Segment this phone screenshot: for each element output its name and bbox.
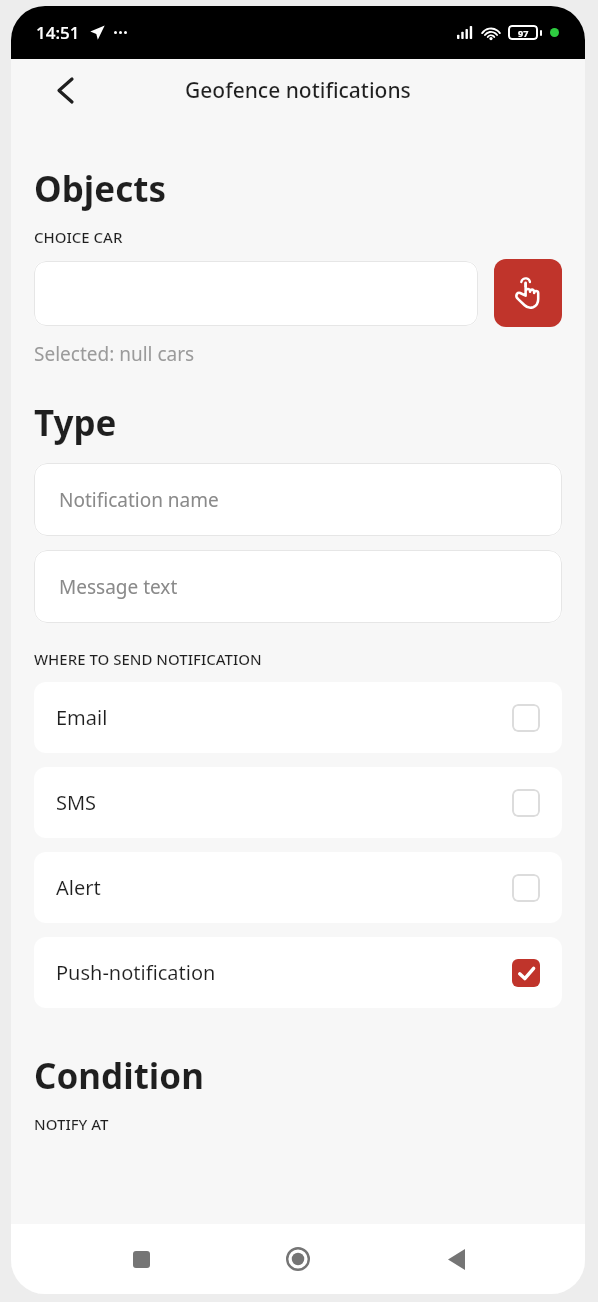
staticText: 97 [518,27,529,39]
staticText: Type [34,399,117,447]
staticText: Email [56,704,108,731]
staticText: SMS [56,789,97,816]
staticText: Notification name [59,487,219,513]
button[interactable]: Choose car [494,259,562,327]
button[interactable]: SMS [34,767,562,838]
button[interactable]: Push-notification [34,937,562,1008]
staticText: Alert [56,874,101,901]
staticText: Push-notification [56,959,216,986]
staticText: WHERE TO SEND NOTIFICATION [34,649,262,669]
staticText: NOTIFY AT [34,1114,109,1134]
staticText: Objects [34,165,166,213]
staticText: 14:51 [36,21,80,44]
staticText: CHOICE CAR [34,227,123,247]
staticText: Condition [34,1052,204,1100]
button[interactable]: Alert [34,852,562,923]
staticText: Selected: null cars [34,341,195,367]
staticText: Geofence notifications [185,76,411,105]
button[interactable]: Recent apps [113,1231,169,1287]
button[interactable]: Notification name [34,463,562,536]
button[interactable]: Home [270,1231,326,1287]
button[interactable] [34,261,478,326]
button[interactable]: Back [43,68,87,112]
button[interactable]: Message text [34,550,562,623]
button[interactable]: Back [428,1231,484,1287]
button[interactable]: Email [34,682,562,753]
staticText: Message text [59,574,178,600]
